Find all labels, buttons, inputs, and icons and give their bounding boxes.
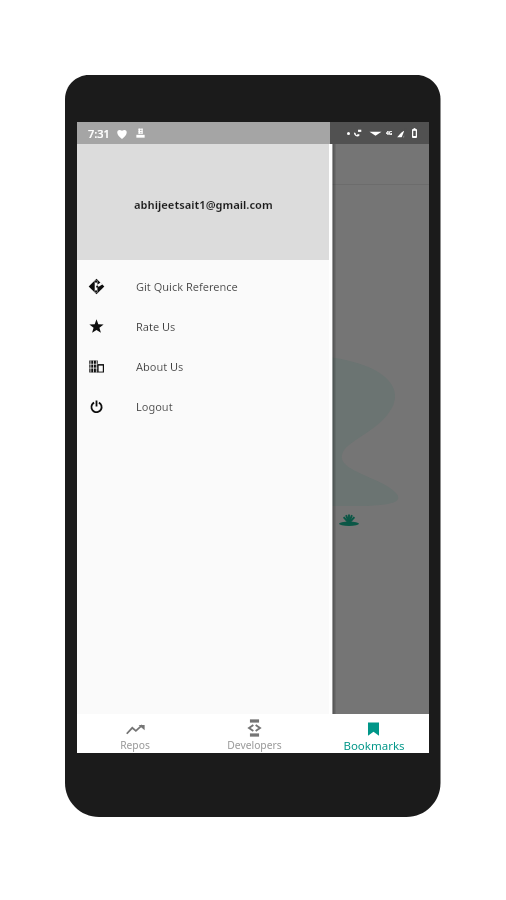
button[interactable]: Rate Us (77, 306, 330, 346)
staticText: 7:31 (88, 126, 110, 141)
staticText: Git Quick Reference (136, 279, 238, 294)
button[interactable]: Repos (77, 714, 195, 752)
button[interactable]: Logout (77, 386, 330, 426)
staticText: About Us (136, 359, 184, 374)
button[interactable]: About Us (77, 346, 330, 386)
staticText: Developers (227, 738, 282, 752)
button[interactable]: Developers (195, 714, 312, 752)
staticText: abhijeetsait1@gmail.com (134, 197, 273, 212)
button[interactable]: Bookmarks (312, 714, 429, 753)
button[interactable]: Git Quick Reference (77, 266, 330, 306)
staticText: Repos (120, 738, 150, 752)
staticText: Rate Us (136, 319, 176, 334)
staticText: Logout (136, 399, 173, 414)
staticText: 4G (386, 130, 393, 137)
staticText: Bookmarks (343, 738, 405, 753)
